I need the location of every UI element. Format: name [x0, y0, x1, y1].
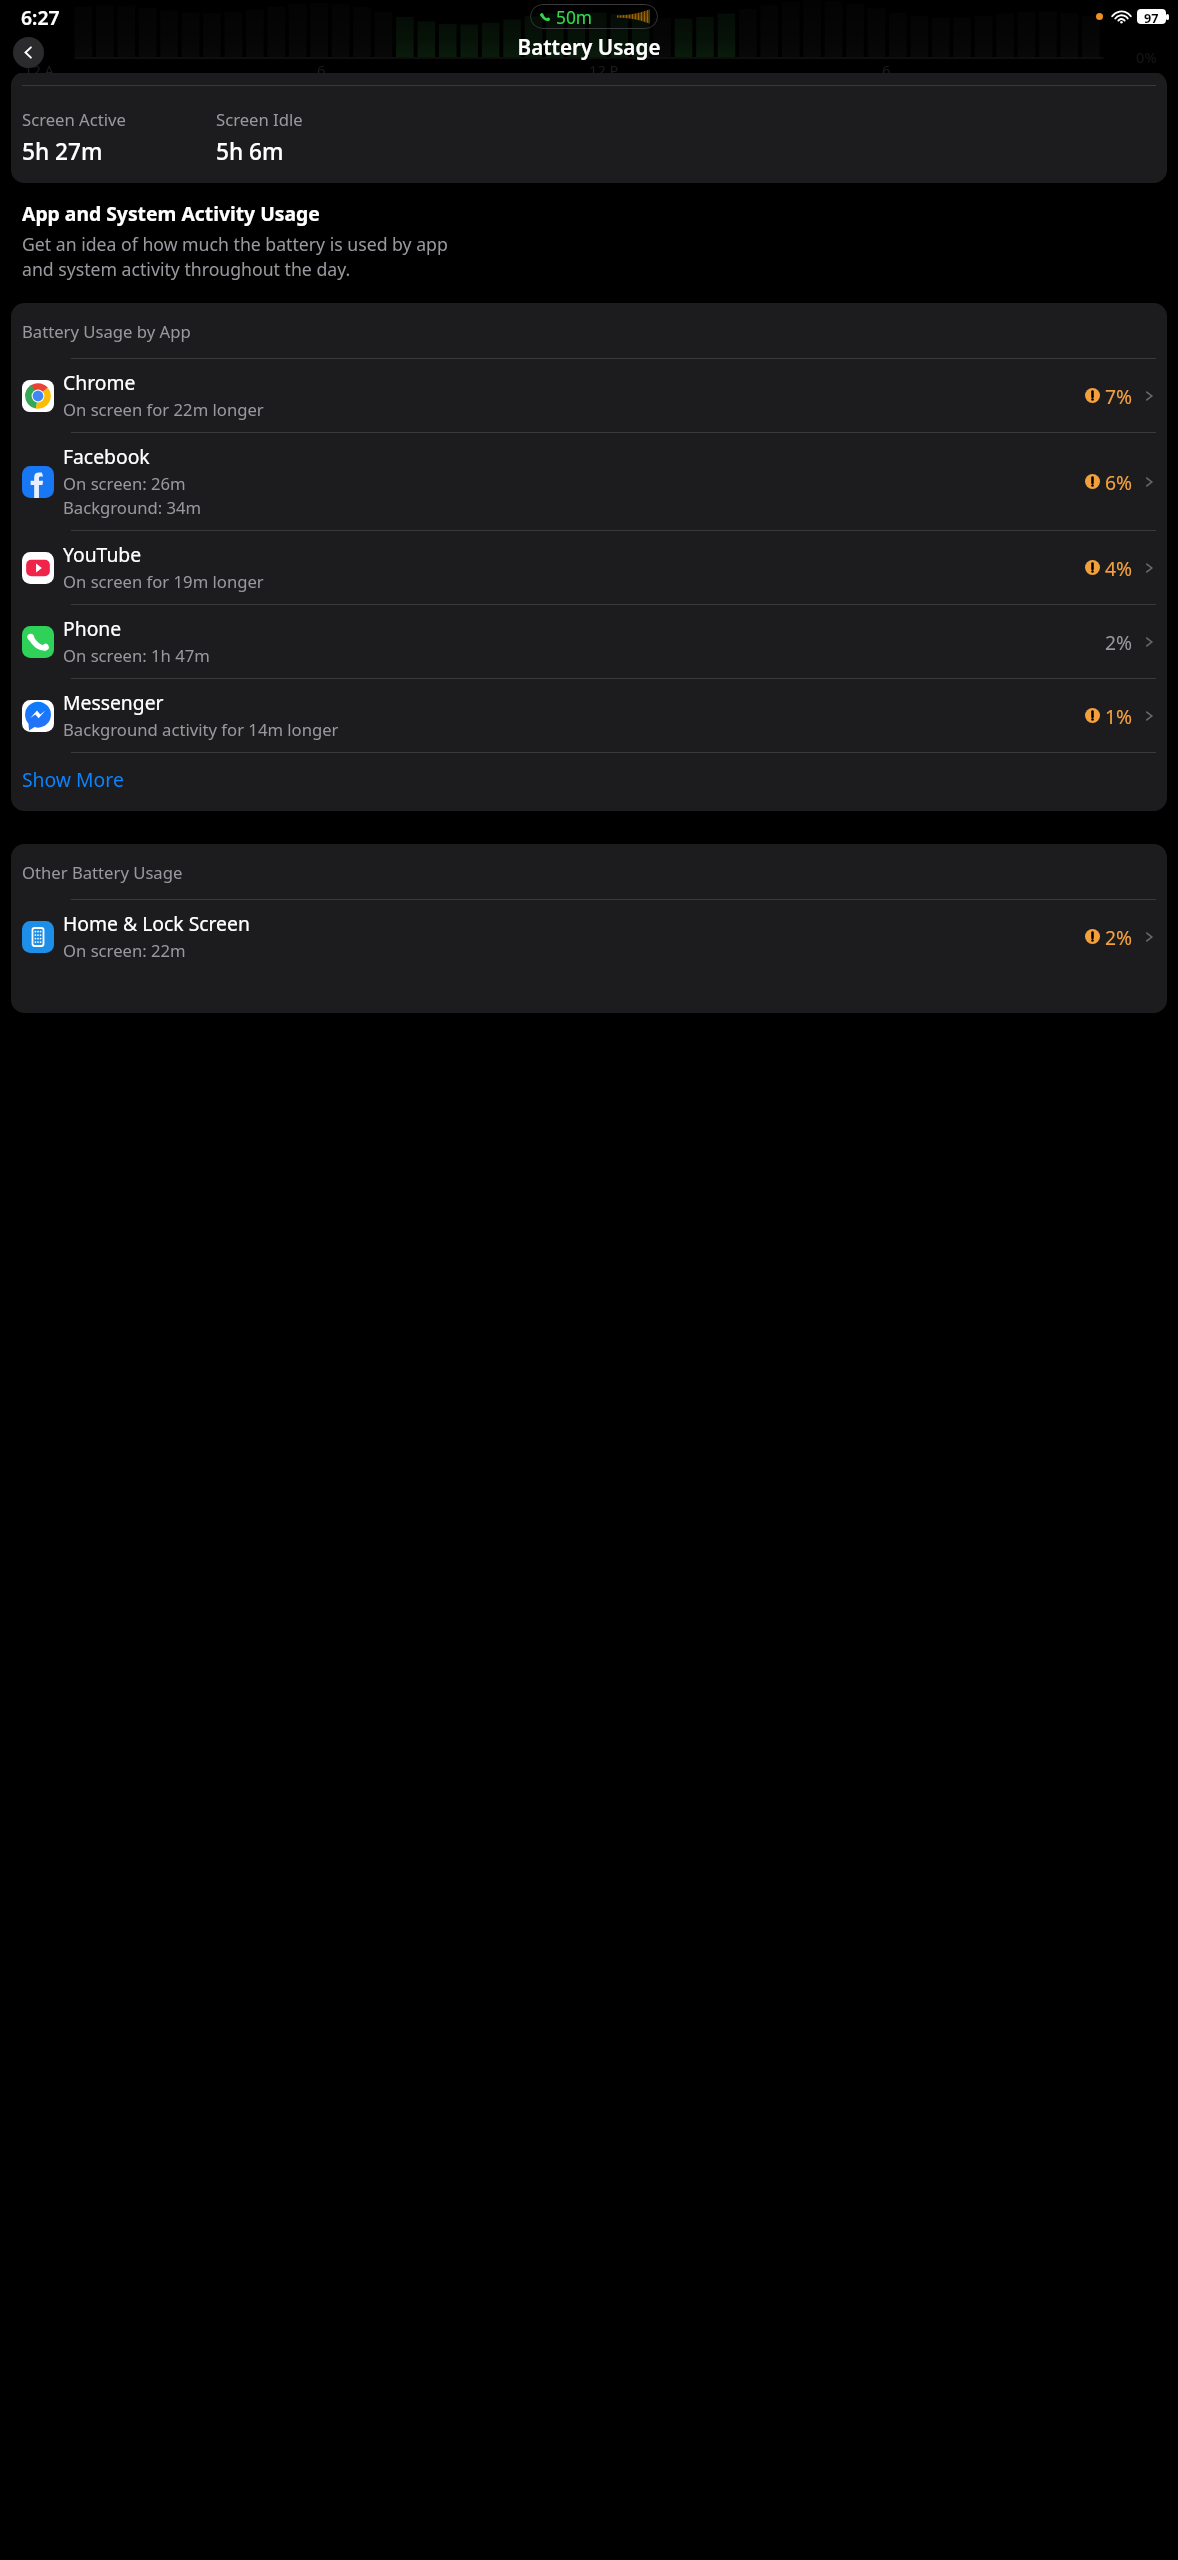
- staticText: 1%: [1105, 703, 1133, 729]
- staticText: 5h 27m: [22, 136, 103, 167]
- staticText: Phone: [63, 615, 122, 641]
- button[interactable]: Back: [13, 37, 44, 68]
- button[interactable]: 50m: [530, 4, 658, 29]
- staticText: Messenger: [63, 689, 164, 715]
- button[interactable]: YouTube: [11, 531, 1167, 604]
- staticText: Screen Active: [22, 108, 126, 131]
- staticText: Background: 34m: [63, 496, 202, 519]
- staticText: On screen for 19m longer: [63, 570, 264, 593]
- staticText: Home & Lock Screen: [63, 910, 250, 936]
- button[interactable]: Facebook: [11, 433, 1167, 530]
- staticText: On screen: 22m: [63, 939, 186, 962]
- staticText: 5h 6m: [216, 136, 284, 167]
- staticText: Get an idea of how much the battery is u…: [22, 232, 448, 281]
- staticText: 50m: [556, 5, 593, 29]
- button[interactable]: Show More: [11, 753, 1167, 811]
- staticText: YouTube: [63, 541, 142, 567]
- staticText: 6: [882, 60, 891, 80]
- button[interactable]: Home & Lock Screen: [11, 900, 1167, 973]
- staticText: 6%: [1105, 469, 1133, 495]
- staticText: 6: [317, 60, 326, 80]
- staticText: 97: [1144, 9, 1159, 24]
- button[interactable]: Messenger: [11, 679, 1167, 752]
- staticText: Facebook: [63, 443, 150, 469]
- staticText: 12 P: [589, 60, 619, 80]
- staticText: 4%: [1105, 555, 1133, 581]
- staticText: Background activity for 14m longer: [63, 718, 339, 741]
- staticText: Screen Idle: [216, 108, 303, 131]
- staticText: Show More: [22, 766, 124, 792]
- staticText: 12 A: [24, 60, 54, 80]
- button[interactable]: Chrome: [11, 359, 1167, 432]
- staticText: App and System Activity Usage: [22, 200, 320, 226]
- staticText: 2%: [1105, 924, 1133, 950]
- staticText: On screen for 22m longer: [63, 398, 264, 421]
- staticText: Chrome: [63, 369, 136, 395]
- staticText: On screen: 1h 47m: [63, 644, 210, 667]
- staticText: 7%: [1105, 383, 1133, 409]
- staticText: 6:27: [21, 4, 60, 30]
- staticText: Other Battery Usage: [22, 861, 183, 884]
- button[interactable]: Phone: [11, 605, 1167, 678]
- staticText: 2%: [1105, 629, 1133, 655]
- staticText: On screen: 26m: [63, 472, 186, 495]
- staticText: 0%: [1136, 47, 1157, 67]
- staticText: Battery Usage by App: [22, 320, 191, 343]
- staticText: Battery Usage: [0, 33, 1178, 61]
